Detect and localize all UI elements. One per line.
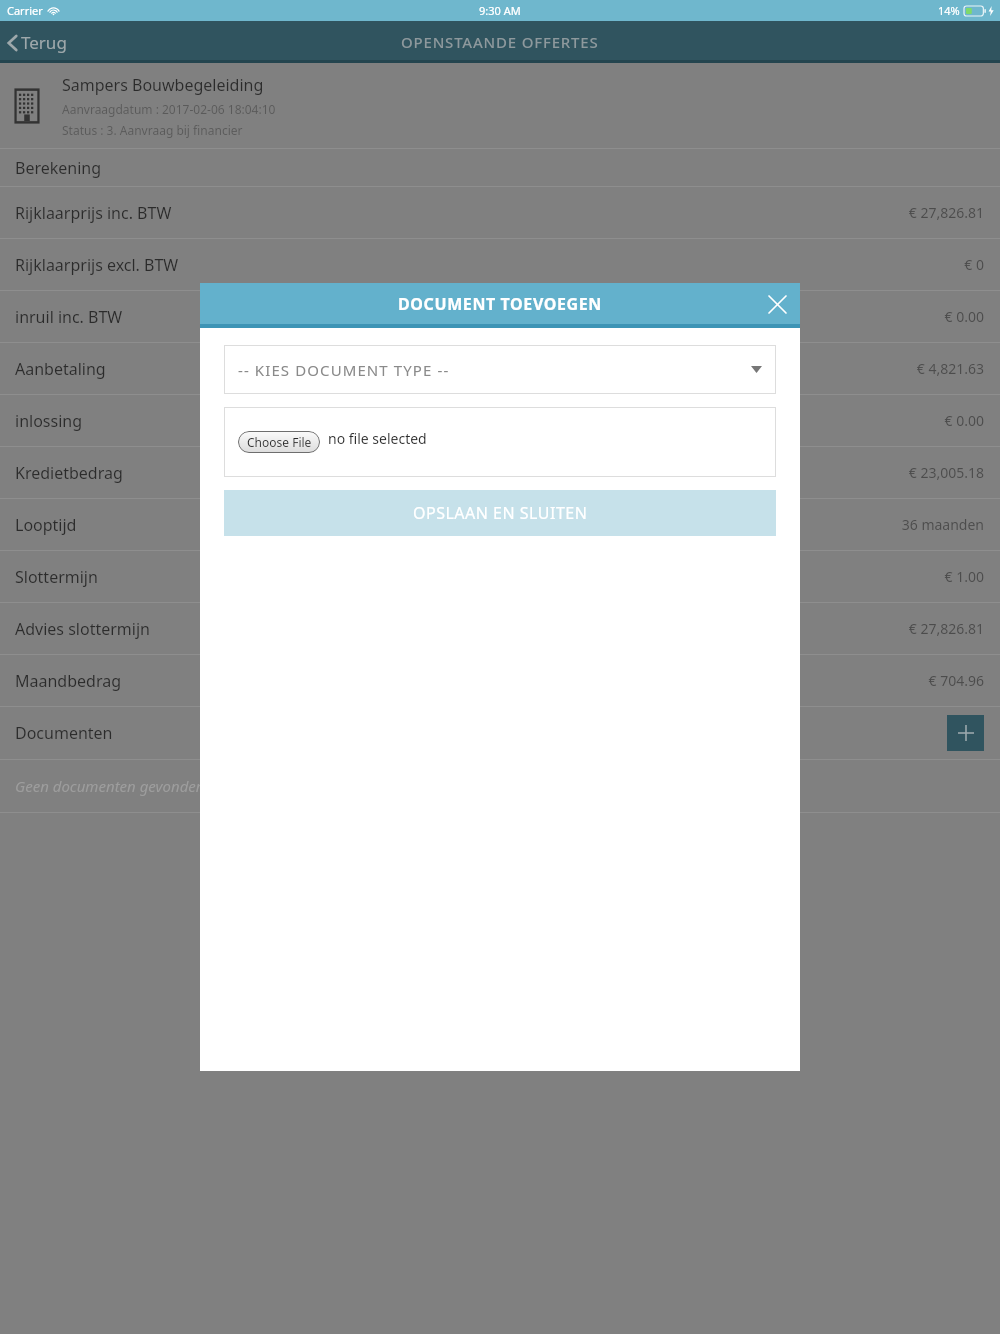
staticText: € 0 [964, 255, 984, 274]
staticText: € 0.00 [944, 411, 984, 430]
staticText: inlossing [15, 410, 83, 432]
button[interactable]: -- KIES DOCUMENT TYPE -- [224, 345, 776, 394]
staticText: Documenten [15, 722, 113, 744]
button[interactable]: Choose File [238, 431, 320, 453]
staticText: no file selected [328, 429, 427, 448]
staticText: -- KIES DOCUMENT TYPE -- [238, 360, 450, 380]
staticText: Sampers Bouwbegeleiding [62, 74, 264, 96]
staticText: OPSLAAN EN SLUITEN [413, 502, 588, 524]
staticText: Terug [21, 31, 67, 54]
button[interactable]: Maandbedrag [0, 655, 1000, 706]
button[interactable]: Aanbetaling [0, 343, 1000, 394]
staticText: € 1.00 [944, 567, 984, 586]
button[interactable]: Advies slottermijn [0, 603, 1000, 654]
staticText: Aanbetaling [15, 358, 106, 380]
button[interactable]: Sluiten [762, 289, 792, 319]
button[interactable]: inruil inc. BTW [0, 291, 1000, 342]
staticText: 14% [938, 3, 960, 18]
staticText: Looptijd [15, 514, 77, 536]
staticText: Rijklaarprijs excl. BTW [15, 254, 179, 276]
staticText: inruil inc. BTW [15, 306, 123, 328]
button[interactable]: Document toevoegen [947, 715, 984, 751]
button[interactable]: Terug [0, 25, 81, 60]
staticText: € 23,005.18 [908, 463, 984, 482]
button[interactable]: Berekening [0, 149, 1000, 186]
staticText: € 27,826.81 [908, 203, 984, 222]
staticText: Choose File [247, 434, 312, 450]
staticText: Rijklaarprijs inc. BTW [15, 202, 172, 224]
staticText: Berekening [15, 157, 102, 179]
staticText: 36 maanden [901, 515, 984, 534]
staticText: DOCUMENT TOEVOEGEN [398, 293, 602, 315]
staticText: Kredietbedrag [15, 462, 123, 484]
staticText: Geen documenten gevonden [15, 776, 205, 796]
button[interactable]: Looptijd [0, 499, 1000, 550]
button[interactable]: Slottermijn [0, 551, 1000, 602]
staticText: OPENSTAANDE OFFERTES [401, 32, 599, 52]
button[interactable]: OPSLAAN EN SLUITEN [224, 490, 776, 536]
staticText: Aanvraagdatum : 2017-02-06 18:04:10 [62, 101, 276, 117]
button[interactable]: Kredietbedrag [0, 447, 1000, 498]
button[interactable]: Rijklaarprijs excl. BTW [0, 239, 1000, 290]
staticText: 9:30 AM [479, 3, 521, 18]
staticText: € 27,826.81 [908, 619, 984, 638]
staticText: Advies slottermijn [15, 618, 150, 640]
staticText: Maandbedrag [15, 670, 122, 692]
staticText: € 0.00 [944, 307, 984, 326]
staticText: Slottermijn [15, 566, 98, 588]
staticText: Status : 3. Aanvraag bij financier [62, 122, 243, 138]
button[interactable]: Rijklaarprijs inc. BTW [0, 187, 1000, 238]
button[interactable]: inlossing [0, 395, 1000, 446]
staticText: € 704.96 [928, 671, 984, 690]
staticText: € 4,821.63 [916, 359, 984, 378]
staticText: Carrier [7, 3, 43, 18]
